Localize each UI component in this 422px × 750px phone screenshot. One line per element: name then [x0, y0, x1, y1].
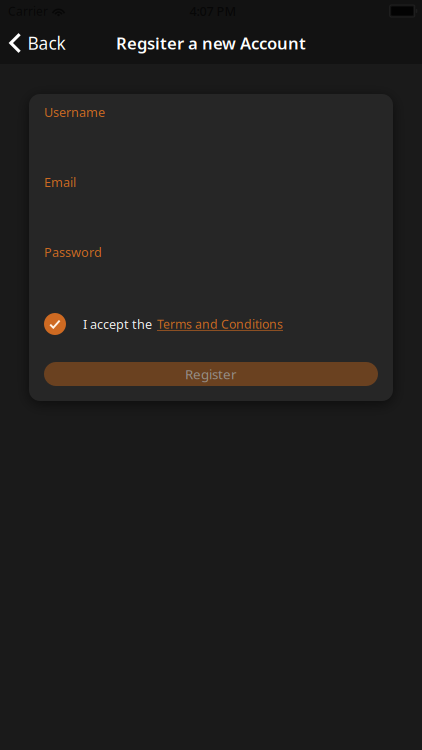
staticText: Register	[185, 365, 237, 383]
staticText: I accept the	[83, 315, 152, 333]
staticText: Regsiter a new Account	[116, 32, 306, 54]
button[interactable]: Register	[44, 362, 378, 386]
button[interactable]: Back	[0, 22, 75, 64]
staticText: Carrier	[8, 3, 48, 19]
staticText: Email	[44, 173, 76, 191]
staticText: 4:07 PM	[189, 2, 236, 20]
staticText: Terms and Conditions	[157, 316, 283, 332]
staticText: Password	[44, 243, 102, 261]
staticText: Username	[44, 103, 105, 121]
button[interactable]: Terms and Conditions	[157, 316, 283, 332]
button[interactable]: Accept terms and conditions	[44, 313, 66, 335]
staticText: Back	[27, 31, 65, 55]
